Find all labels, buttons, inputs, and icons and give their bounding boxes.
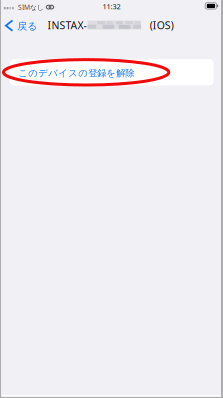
staticText: INSTAX- xyxy=(48,18,87,32)
staticText: このデバイスの登録を解除 xyxy=(18,67,134,79)
staticText: SIMなし xyxy=(18,3,44,12)
button[interactable]: このデバイスの登録を解除 xyxy=(10,59,213,85)
staticText: (IOS) xyxy=(150,18,174,32)
staticText: 戻る xyxy=(17,20,37,32)
staticText: 11:32 xyxy=(103,1,121,11)
button[interactable]: 戻る xyxy=(0,0,40,42)
